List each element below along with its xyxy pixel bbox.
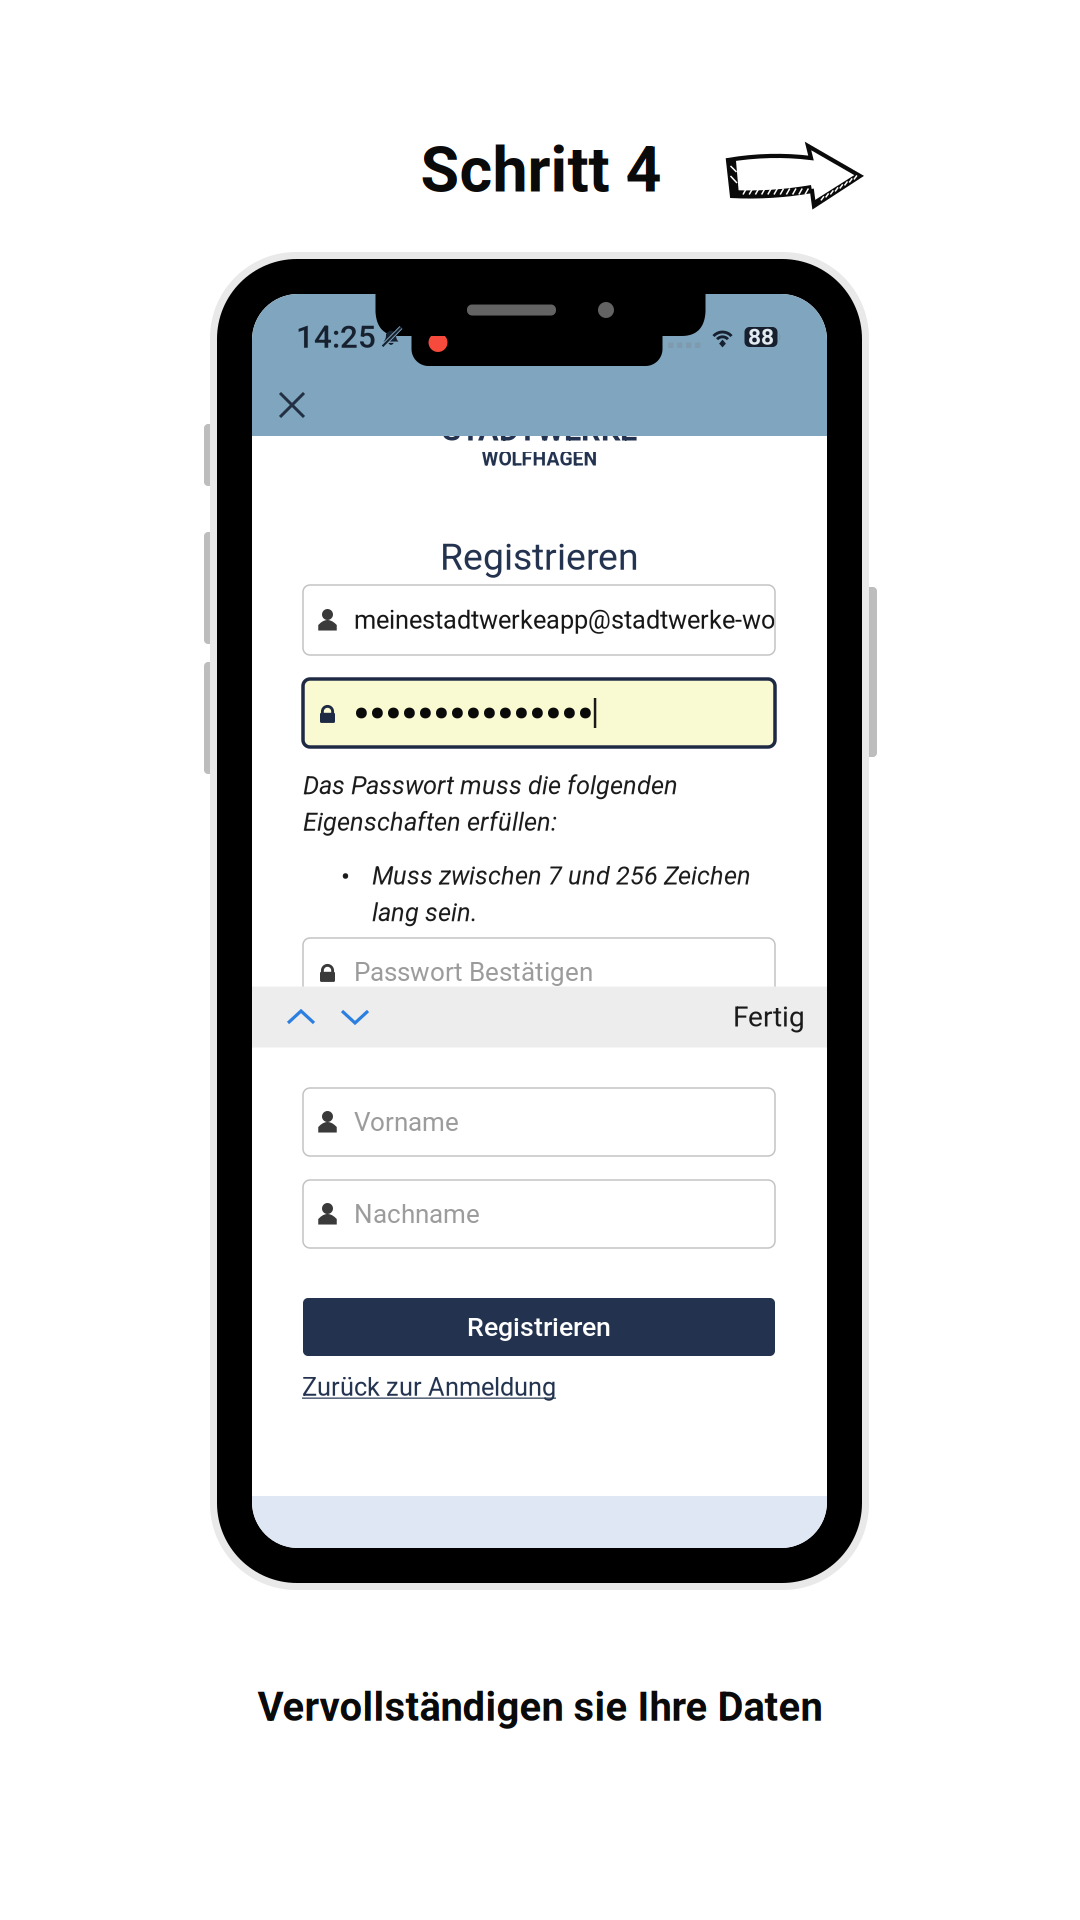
button[interactable]: Registrieren	[303, 1298, 775, 1356]
staticText: •	[341, 861, 350, 892]
staticText: WOLFHAGEN	[481, 448, 597, 470]
button[interactable]: Nächstes Feld	[328, 995, 382, 1039]
staticText: Registrieren	[467, 1311, 611, 1343]
button[interactable]: Schließen	[266, 379, 318, 431]
staticText: Zurück zur Anmeldung	[302, 1372, 556, 1402]
staticText: Fertig	[733, 1001, 805, 1033]
staticText: 14:25	[296, 319, 376, 355]
staticText: Nachname	[354, 1199, 480, 1229]
button[interactable]: Zurück zur Anmeldung	[302, 1372, 556, 1402]
button[interactable]: Fertig	[733, 1001, 805, 1033]
button[interactable]: Vorheriges Feld	[274, 995, 328, 1039]
staticText: Muss zwischen 7 und 256 Zeichen	[372, 861, 751, 891]
staticText: meinestadtwerkeapp@stadtwerke-wolfhagen.…	[354, 605, 893, 635]
staticText: lang sein.	[372, 898, 477, 927]
staticText: Das Passwort muss die folgenden	[303, 771, 678, 800]
staticText: Schritt 4	[420, 133, 661, 207]
staticText: Registrieren	[440, 535, 639, 579]
staticText: Vorname	[354, 1107, 459, 1137]
staticText: Passwort Bestätigen	[354, 957, 593, 987]
staticText: Vervollständigen sie Ihre Daten	[257, 1684, 822, 1730]
staticText: 88	[748, 324, 774, 350]
staticText: Eigenschaften erfüllen:	[303, 807, 557, 837]
staticText: STADTWERKE	[442, 412, 637, 448]
